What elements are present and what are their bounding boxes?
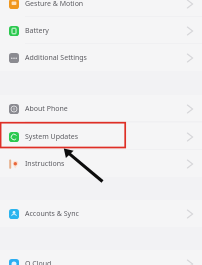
staticText: Instructions xyxy=(25,159,186,169)
staticText: Accounts & Sync xyxy=(25,209,186,219)
staticText: Additional Settings xyxy=(25,53,186,63)
button[interactable]: Q Cloud xyxy=(0,250,202,265)
staticText: About Phone xyxy=(25,104,186,114)
staticText: Q Cloud xyxy=(25,259,186,265)
button[interactable]: Battery xyxy=(0,17,202,44)
button[interactable]: Gesture & Motion xyxy=(0,0,202,17)
button[interactable]: System Updates xyxy=(0,123,202,150)
button[interactable]: Accounts & Sync xyxy=(0,200,202,227)
staticText: Battery xyxy=(25,26,186,36)
staticText: System Updates xyxy=(25,132,186,142)
staticText: Gesture & Motion xyxy=(25,0,186,9)
button[interactable]: Additional Settings xyxy=(0,44,202,71)
button[interactable]: About Phone xyxy=(0,95,202,122)
button[interactable]: Instructions xyxy=(0,150,202,177)
